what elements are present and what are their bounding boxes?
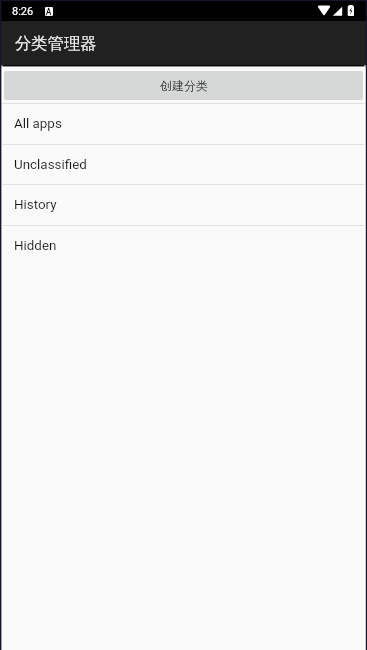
staticText: Unclassified <box>14 157 87 173</box>
button[interactable]: Hidden <box>0 226 367 266</box>
staticText: 创建分类 <box>160 78 208 93</box>
staticText: 分类管理器 <box>15 33 97 54</box>
staticText: History <box>14 197 57 213</box>
button[interactable]: 创建分类 <box>4 71 363 100</box>
staticText: All apps <box>14 116 62 132</box>
staticText: Hidden <box>14 238 57 254</box>
staticText: A <box>46 7 52 16</box>
button[interactable]: All apps <box>0 104 367 144</box>
button[interactable]: History <box>0 185 367 225</box>
staticText: 8:26 <box>12 5 34 18</box>
button[interactable]: Unclassified <box>0 145 367 184</box>
